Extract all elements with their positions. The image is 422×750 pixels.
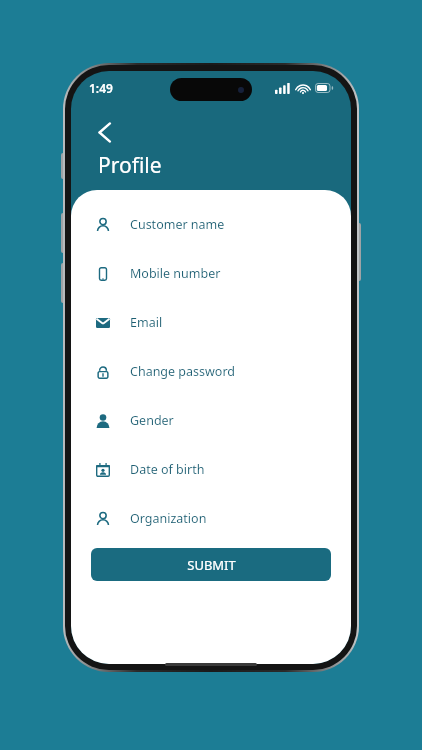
staticText: 1:49 [89, 80, 113, 96]
staticText: Customer name [130, 216, 225, 233]
staticText: Organization [130, 510, 207, 527]
staticText: Gender [130, 412, 174, 429]
button[interactable]: Mobile number [71, 249, 351, 298]
button[interactable]: Date of birth [71, 445, 351, 494]
button[interactable]: Organization [71, 494, 351, 543]
staticText: Email [130, 314, 163, 331]
staticText: Mobile number [130, 265, 221, 282]
button[interactable]: Customer name [71, 200, 351, 249]
staticText: Change password [130, 363, 236, 380]
button[interactable]: Change password [71, 347, 351, 396]
staticText: SUBMIT [187, 556, 236, 574]
button[interactable]: Back [87, 115, 121, 149]
button[interactable]: Upload Organization ID [71, 543, 351, 592]
staticText: Profile [98, 151, 162, 180]
button[interactable]: SUBMIT [91, 548, 331, 581]
button[interactable]: Gender [71, 396, 351, 445]
staticText: Upload Organization ID [130, 559, 269, 576]
button[interactable]: Email [71, 298, 351, 347]
staticText: Date of birth [130, 461, 205, 478]
